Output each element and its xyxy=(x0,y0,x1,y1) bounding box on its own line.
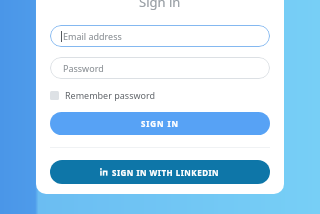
other: LinkedIn xyxy=(100,168,108,176)
button[interactable]: Password xyxy=(50,57,270,79)
button[interactable]: SIGN IN xyxy=(50,112,270,135)
staticText: SIGN IN WITH LINKEDIN xyxy=(112,167,220,178)
button[interactable]: LinkedIn xyxy=(50,160,270,184)
staticText: Password xyxy=(63,62,104,74)
staticText: Sign in xyxy=(139,0,181,11)
button[interactable]: Email address xyxy=(50,25,270,47)
button[interactable]: Remember password xyxy=(50,87,156,103)
staticText: Remember password xyxy=(65,89,156,101)
staticText: Email address xyxy=(63,30,122,42)
staticText: SIGN IN xyxy=(141,118,179,129)
